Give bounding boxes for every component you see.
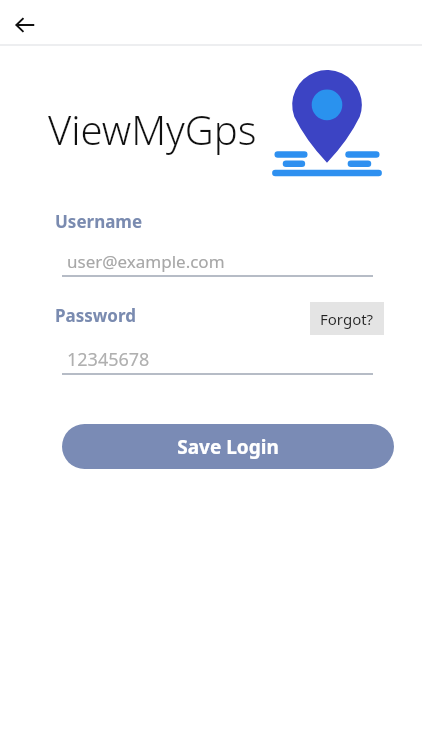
staticText: Password: [55, 304, 136, 327]
button[interactable]: Save Login: [62, 424, 394, 469]
button[interactable]: Back: [4, 4, 46, 46]
staticText: ViewMyGps: [48, 102, 257, 156]
button[interactable]: user@example.com: [62, 245, 373, 277]
staticText: Forgot?: [320, 309, 374, 329]
button[interactable]: Forgot?: [310, 302, 384, 335]
button[interactable]: 12345678: [62, 343, 373, 375]
staticText: user@example.com: [67, 250, 225, 273]
staticText: 12345678: [67, 347, 150, 372]
staticText: Save Login: [177, 434, 279, 460]
staticText: Username: [55, 210, 143, 233]
